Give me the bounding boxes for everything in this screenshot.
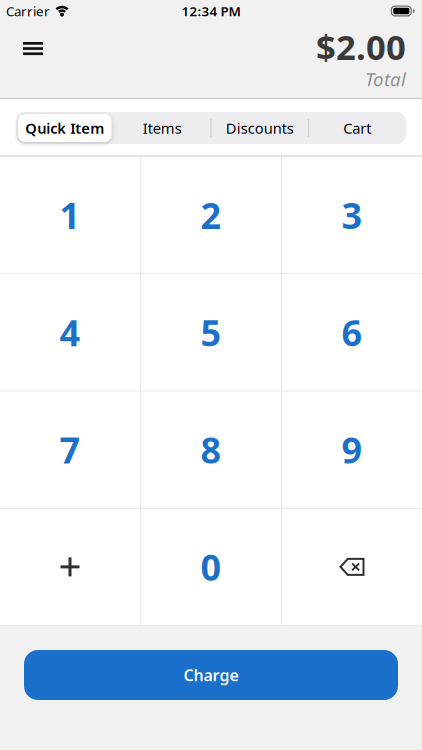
staticText: Quick Item <box>25 118 104 138</box>
button[interactable]: 4 <box>0 274 140 390</box>
staticText: 3 <box>341 191 362 239</box>
staticText: 9 <box>341 426 362 473</box>
button[interactable]: 6 <box>282 274 422 390</box>
staticText: Carrier <box>6 2 50 20</box>
staticText: 1 <box>59 191 80 239</box>
staticText: 4 <box>59 308 80 356</box>
button[interactable]: Delete <box>282 509 422 625</box>
staticText: 5 <box>200 308 221 356</box>
button[interactable]: Items <box>113 112 211 144</box>
button[interactable]: Add <box>0 509 140 625</box>
staticText: 12:34 PM <box>181 2 240 20</box>
button[interactable]: 5 <box>141 274 281 390</box>
staticText: 2 <box>200 191 221 239</box>
staticText: Cart <box>343 118 371 138</box>
staticText: 8 <box>200 426 221 473</box>
button[interactable]: Discounts <box>211 112 308 144</box>
button[interactable]: Cart <box>308 112 406 144</box>
button[interactable]: 2 <box>141 157 281 273</box>
button[interactable]: 0 <box>141 509 281 625</box>
button[interactable]: 1 <box>0 157 140 273</box>
button[interactable]: Quick Item <box>16 112 113 144</box>
staticText: 0 <box>200 543 221 591</box>
staticText: 7 <box>59 426 80 473</box>
button[interactable]: 8 <box>141 391 281 508</box>
staticText: Items <box>143 118 182 138</box>
staticText: Total <box>365 67 406 91</box>
staticText: 6 <box>341 308 362 356</box>
button[interactable]: 7 <box>0 391 140 508</box>
staticText: $2.00 <box>316 23 406 69</box>
staticText: Charge <box>183 664 238 686</box>
button[interactable]: Menu <box>21 38 45 59</box>
button[interactable]: 9 <box>282 391 422 508</box>
button[interactable]: 3 <box>282 157 422 273</box>
button[interactable]: Charge <box>24 650 398 700</box>
staticText: Discounts <box>226 118 294 138</box>
